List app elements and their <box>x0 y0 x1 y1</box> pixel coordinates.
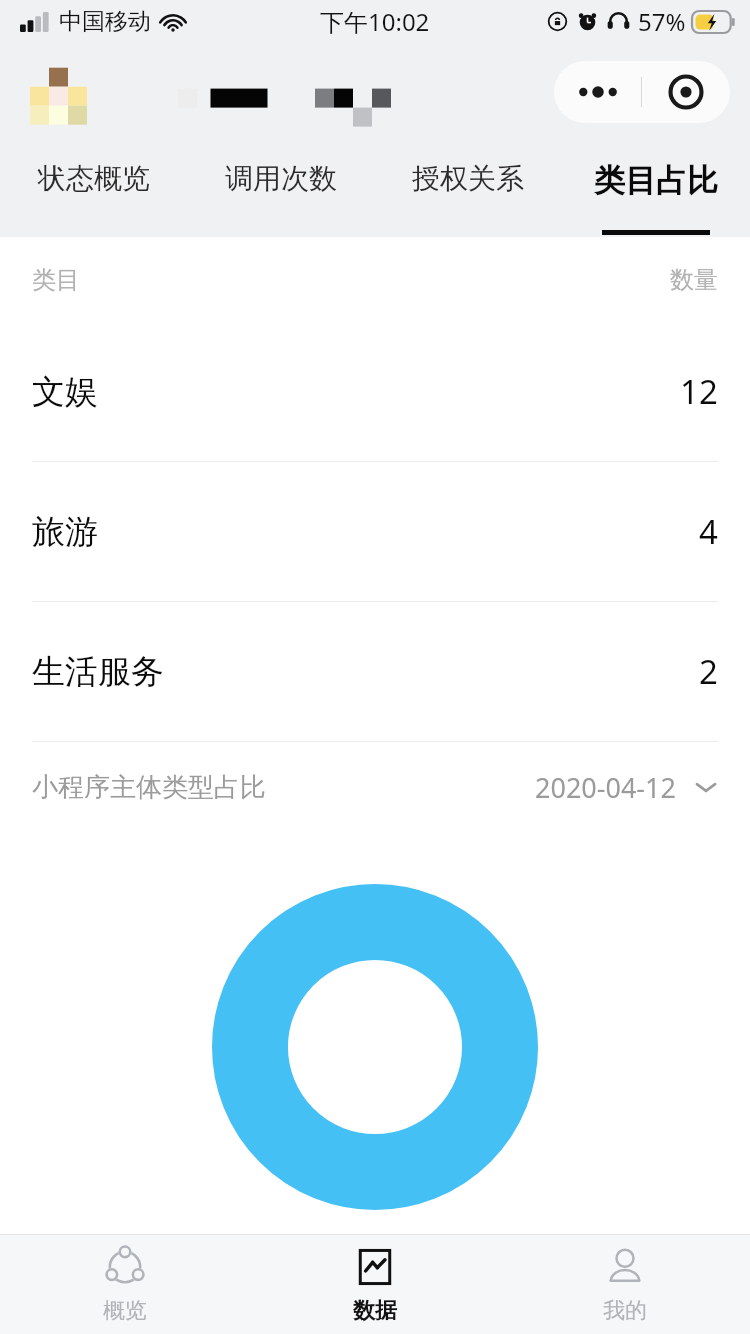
staticText: 下午10:02 <box>320 5 430 38</box>
staticText: 类目占比 <box>594 161 718 200</box>
button[interactable]: More <box>554 61 641 123</box>
button[interactable]: 授权关系 <box>374 142 562 237</box>
button[interactable]: Close <box>642 61 730 123</box>
staticText: 数量 <box>670 265 718 295</box>
staticText: 57% <box>638 5 686 38</box>
button[interactable]: 文娱 <box>0 322 750 461</box>
button[interactable]: 概览 <box>0 1235 250 1334</box>
staticText: 小程序主体类型占比 <box>32 771 266 804</box>
staticText: 4 <box>699 509 718 554</box>
button[interactable]: 数据 <box>250 1235 500 1334</box>
button[interactable]: 状态概览 <box>0 142 187 237</box>
staticText: 文娱 <box>32 371 98 413</box>
staticText: 2 <box>699 649 718 694</box>
staticText: 授权关系 <box>412 161 524 196</box>
staticText: 中国移动 <box>59 7 151 36</box>
staticText: 12 <box>680 369 718 414</box>
button[interactable]: 调用次数 <box>187 142 374 237</box>
staticText: 状态概览 <box>38 161 150 196</box>
button[interactable]: 旅游 <box>0 462 750 601</box>
staticText: 数据 <box>353 1297 397 1325</box>
button[interactable]: 类目占比 <box>562 142 750 237</box>
button[interactable]: 我的 <box>500 1235 750 1334</box>
button[interactable]: 小程序主体类型占比 <box>0 742 750 832</box>
button[interactable]: 生活服务 <box>0 602 750 741</box>
staticText: 概览 <box>103 1297 147 1325</box>
staticText: 2020-04-12 <box>535 769 676 806</box>
staticText: 我的 <box>603 1297 647 1325</box>
staticText: 生活服务 <box>32 651 164 693</box>
staticText: 类目 <box>32 265 80 295</box>
staticText: 旅游 <box>32 511 98 553</box>
staticText: 调用次数 <box>225 161 337 196</box>
